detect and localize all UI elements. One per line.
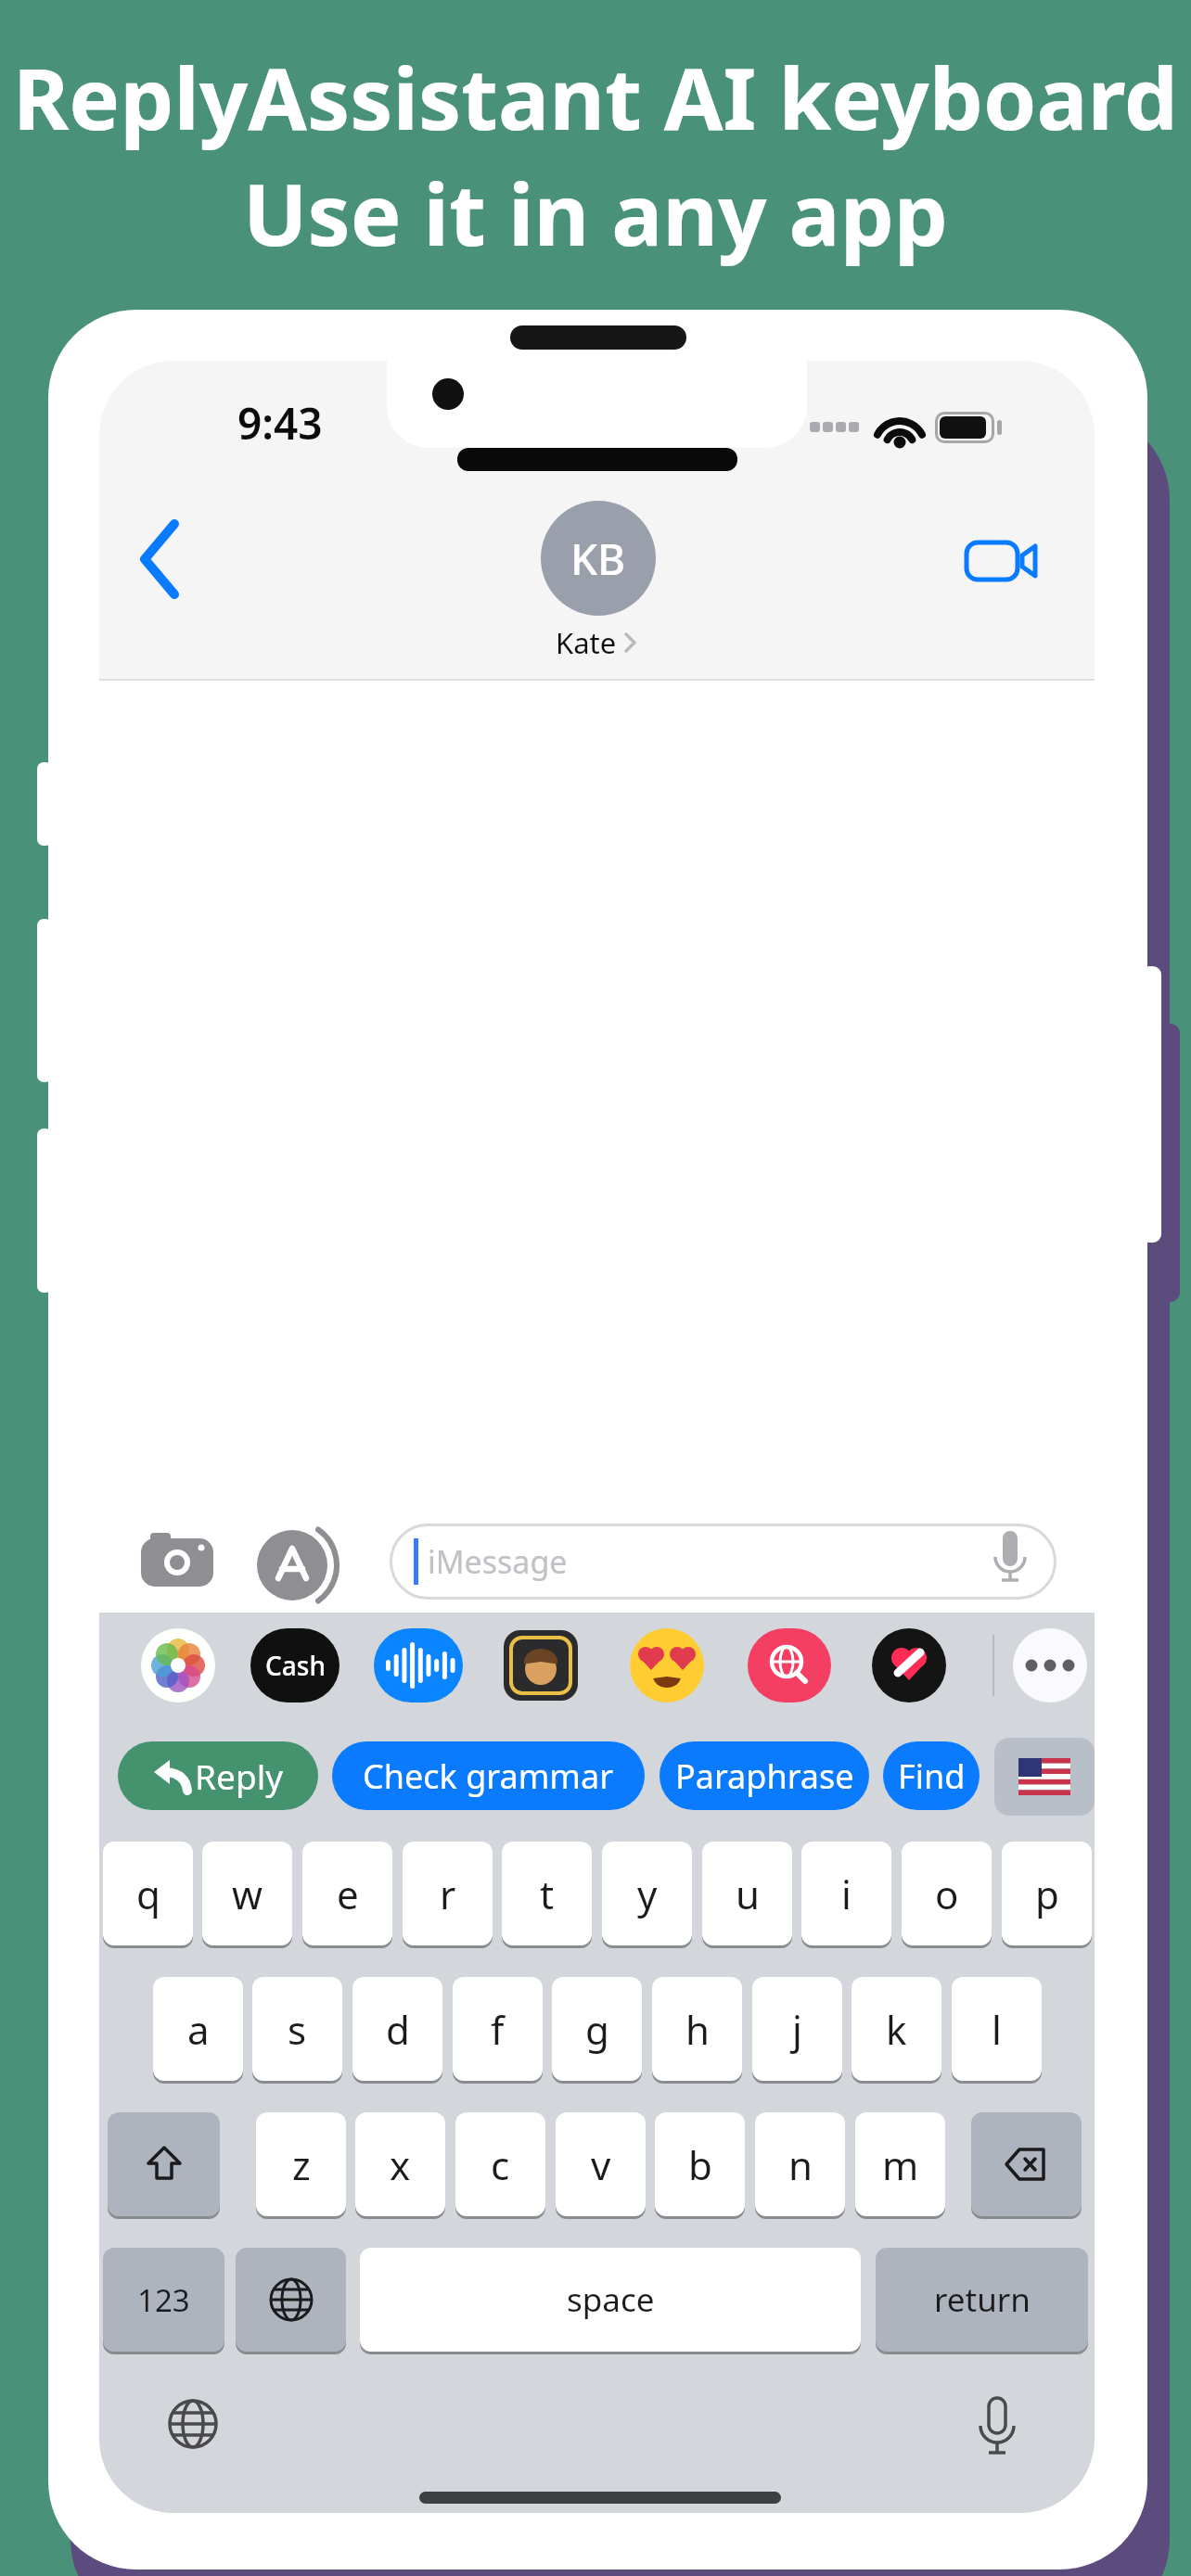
staticText: o xyxy=(935,1868,959,1920)
staticText: g xyxy=(585,2003,609,2056)
button[interactable] xyxy=(971,2112,1082,2216)
button[interactable] xyxy=(630,1628,704,1702)
staticText: p xyxy=(1035,1868,1059,1920)
staticText: j xyxy=(792,2003,802,2056)
button[interactable] xyxy=(390,1524,1057,1600)
button[interactable]: Check grammar xyxy=(332,1741,645,1810)
staticText: q xyxy=(136,1868,160,1920)
button[interactable]: o xyxy=(902,1842,992,1945)
button[interactable]: y xyxy=(602,1842,692,1945)
staticText: iMessage xyxy=(428,1540,568,1583)
button[interactable]: b xyxy=(655,2112,745,2216)
staticText: d xyxy=(386,2003,410,2056)
staticText: r xyxy=(440,1868,456,1920)
button[interactable]: t xyxy=(502,1842,592,1945)
staticText: 123 xyxy=(137,2279,190,2321)
staticText: a xyxy=(187,2003,210,2056)
button[interactable]: l xyxy=(952,1977,1042,2081)
button[interactable]: k xyxy=(852,1977,941,2081)
button[interactable]: return xyxy=(876,2248,1088,2352)
button[interactable]: q xyxy=(103,1842,193,1945)
staticText: Check grammar xyxy=(363,1753,614,1799)
staticText: return xyxy=(934,2277,1031,2322)
button[interactable]: s xyxy=(252,1977,342,2081)
button[interactable]: n xyxy=(755,2112,845,2216)
staticText: e xyxy=(337,1868,359,1920)
button[interactable]: v xyxy=(556,2112,646,2216)
staticText: s xyxy=(288,2003,307,2056)
staticText: t xyxy=(540,1868,555,1920)
button[interactable] xyxy=(748,1628,831,1702)
staticText: l xyxy=(992,2003,1002,2056)
staticText: Paraphrase xyxy=(675,1753,854,1799)
button[interactable]: u xyxy=(702,1842,792,1945)
button[interactable] xyxy=(167,2398,219,2450)
button[interactable]: Reply xyxy=(118,1741,318,1810)
button[interactable]: w xyxy=(202,1842,292,1945)
button[interactable]: x xyxy=(355,2112,445,2216)
staticText: v xyxy=(591,2138,611,2191)
button[interactable] xyxy=(872,1628,946,1702)
staticText: Use it in any app xyxy=(243,155,948,271)
button[interactable]: e xyxy=(302,1842,392,1945)
staticText: n xyxy=(788,2138,813,2191)
staticText: w xyxy=(232,1868,263,1920)
staticText: space xyxy=(567,2277,655,2322)
button[interactable]: j xyxy=(752,1977,842,2081)
button[interactable] xyxy=(374,1628,463,1702)
button[interactable]: p xyxy=(1002,1842,1092,1945)
button[interactable] xyxy=(967,539,1041,583)
button[interactable]: d xyxy=(352,1977,442,2081)
staticText: b xyxy=(688,2138,712,2191)
staticText: m xyxy=(882,2138,919,2191)
button[interactable]: g xyxy=(552,1977,642,2081)
staticText: Reply xyxy=(195,1753,284,1799)
staticText: 9:43 xyxy=(237,394,323,444)
button[interactable] xyxy=(134,516,183,602)
button[interactable]: 123 xyxy=(103,2248,224,2352)
staticText: x xyxy=(390,2138,411,2191)
staticText: k xyxy=(886,2003,907,2056)
button[interactable]: i xyxy=(801,1842,891,1945)
button[interactable]: z xyxy=(256,2112,346,2216)
staticText: ReplyAssistant AI keyboard xyxy=(13,39,1178,155)
button[interactable] xyxy=(108,2112,220,2216)
button[interactable] xyxy=(1013,1628,1087,1702)
staticText: y xyxy=(637,1868,658,1920)
button[interactable] xyxy=(973,2396,1021,2463)
staticText: Find xyxy=(898,1753,966,1799)
button[interactable]: KB xyxy=(541,501,656,616)
button[interactable]: c xyxy=(455,2112,545,2216)
button[interactable]: Paraphrase xyxy=(660,1741,869,1810)
button[interactable]: r xyxy=(403,1842,493,1945)
staticText: Cash xyxy=(265,1648,326,1683)
staticText: u xyxy=(736,1868,760,1920)
button[interactable]: space xyxy=(360,2248,861,2352)
button[interactable]: Cash xyxy=(250,1628,339,1702)
button[interactable] xyxy=(250,1521,342,1610)
staticText: z xyxy=(292,2138,311,2191)
staticText: KB xyxy=(570,529,626,588)
button[interactable] xyxy=(994,1738,1095,1816)
button[interactable]: Find xyxy=(883,1741,980,1810)
staticText: Kate xyxy=(556,623,617,662)
button[interactable]: h xyxy=(652,1977,742,2081)
staticText: h xyxy=(685,2003,710,2056)
button[interactable] xyxy=(141,1531,215,1588)
button[interactable] xyxy=(504,1630,578,1701)
button[interactable]: m xyxy=(855,2112,945,2216)
button[interactable] xyxy=(141,1628,215,1702)
staticText: f xyxy=(491,2003,505,2056)
staticText: i xyxy=(841,1868,852,1920)
button[interactable]: a xyxy=(153,1977,243,2081)
staticText: c xyxy=(491,2138,510,2191)
button[interactable]: f xyxy=(453,1977,543,2081)
button[interactable] xyxy=(236,2248,346,2352)
